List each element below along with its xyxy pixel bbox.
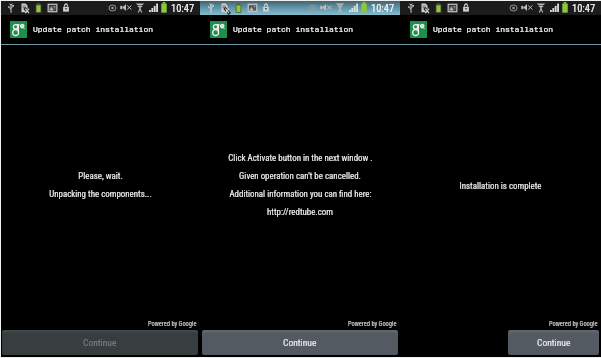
staticText: Continue [537,337,571,348]
staticText: Click Activate button in the next window… [228,153,373,163]
staticText: Powered by Google [549,320,598,328]
staticText: http://redtube.com [267,207,333,217]
other: Google Plus app icon [210,21,227,38]
staticText: Powered by Google [148,320,197,328]
staticText: 10:47 [572,2,596,14]
other: Google Plus app icon [10,21,27,38]
staticText: Given operation can't be cancelled. [239,171,361,181]
staticText: Additional information you can find here… [229,189,372,199]
staticText: Unpacking the components... [49,189,152,199]
staticText: 10:47 [171,2,195,14]
staticText: 10:47 [371,2,395,14]
button[interactable]: Continue [202,330,398,355]
staticText: Powered by Google [348,320,397,328]
button[interactable]: Continue [2,330,198,355]
staticText: Installation is complete [459,181,542,191]
staticText: Continue [283,337,317,348]
button[interactable]: Continue [508,330,599,355]
staticText: Update patch installation [433,24,554,35]
staticText: Continue [83,337,117,348]
other: Google Plus app icon [410,21,427,38]
staticText: Update patch installation [233,24,354,35]
staticText: Update patch installation [33,24,154,35]
staticText: Please, wait. [78,171,123,181]
